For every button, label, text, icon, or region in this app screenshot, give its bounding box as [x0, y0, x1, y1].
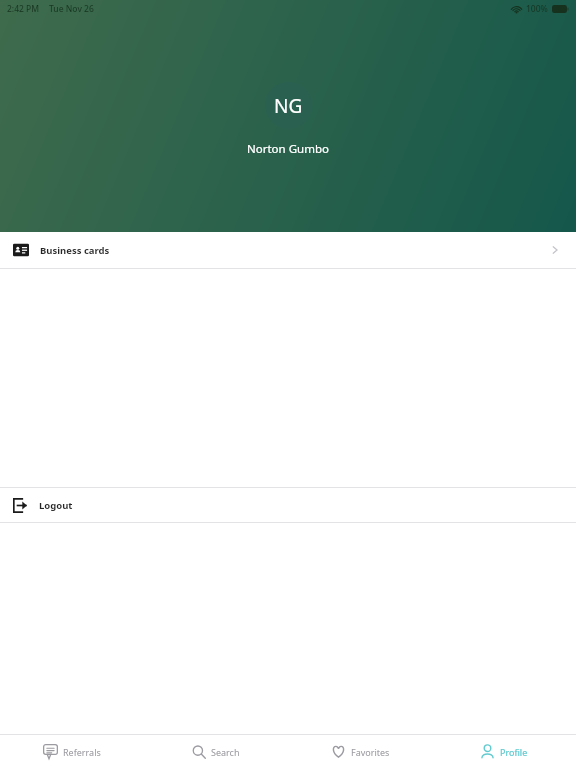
staticText: Profile — [500, 746, 528, 758]
button[interactable]: Logout — [0, 488, 576, 522]
button[interactable]: Referrals — [0, 735, 144, 768]
staticText: 2:42 PM — [7, 3, 40, 15]
staticText: Business cards — [40, 244, 110, 257]
staticText: Favorites — [351, 746, 390, 758]
staticText: NG — [274, 93, 303, 119]
button[interactable]: Search — [144, 735, 288, 768]
staticText: 100% — [526, 3, 548, 15]
staticText: Tue Nov 26 — [49, 3, 94, 15]
button[interactable]: Profile — [432, 735, 576, 768]
staticText: Logout — [39, 499, 73, 512]
staticText: Search — [211, 746, 240, 758]
staticText: Norton Gumbo — [247, 141, 329, 157]
staticText: Referrals — [63, 746, 101, 758]
button[interactable]: Business cards — [0, 232, 576, 268]
button[interactable]: Favorites — [288, 735, 432, 768]
